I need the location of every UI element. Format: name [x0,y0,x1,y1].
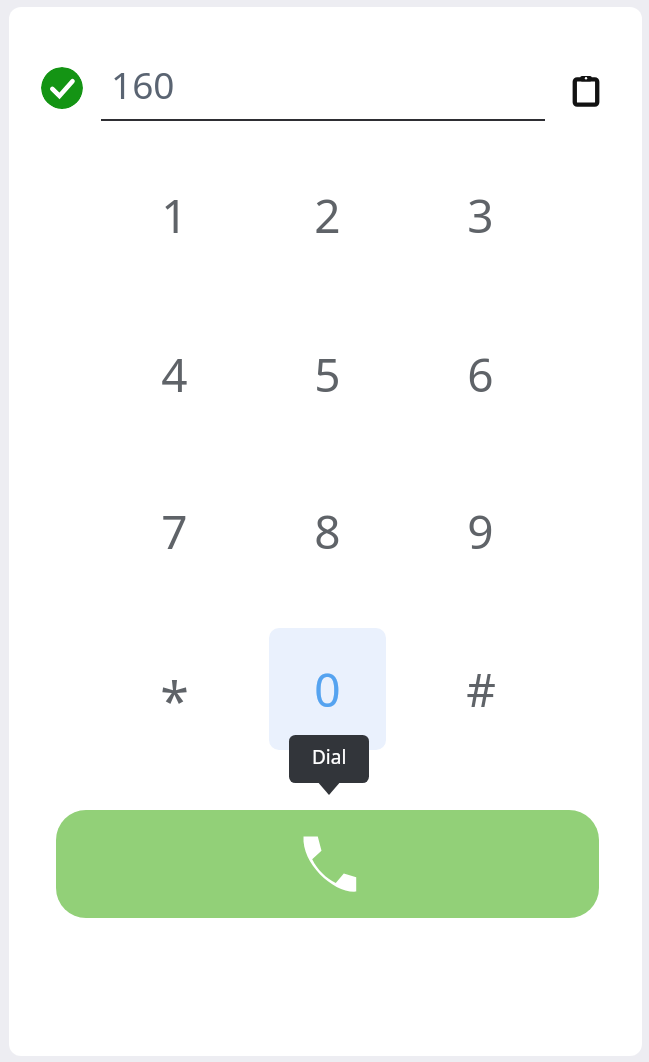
button[interactable]: 1 [116,154,233,276]
staticText: 5 [314,343,341,406]
button[interactable]: 8 [269,470,386,592]
button[interactable]: Call [56,810,599,918]
staticText: 4 [161,343,188,406]
button[interactable]: # [422,628,539,750]
staticText: 9 [467,500,494,563]
staticText: 7 [161,500,188,563]
staticText: # [466,658,496,721]
button[interactable]: 4 [116,313,233,435]
staticText: Dial [312,744,347,770]
button[interactable]: 6 [422,313,539,435]
button[interactable]: 2 [269,154,386,276]
button[interactable]: Paste from clipboard [564,69,608,113]
button[interactable]: 5 [269,313,386,435]
button[interactable]: 0 [269,628,386,750]
staticText: 160 [111,59,175,109]
staticText: 3 [467,184,494,247]
staticText: 2 [314,184,341,247]
staticText: 0 [314,658,341,721]
button[interactable]: Valid number [41,67,83,109]
staticText: 8 [314,500,341,563]
staticText: * [160,664,189,735]
button[interactable]: 7 [116,470,233,592]
button[interactable]: 3 [422,154,539,276]
button[interactable]: 160 [101,59,545,127]
button[interactable]: * [116,628,233,750]
staticText: 6 [467,343,494,406]
button[interactable]: 9 [422,470,539,592]
staticText: 1 [161,184,188,247]
